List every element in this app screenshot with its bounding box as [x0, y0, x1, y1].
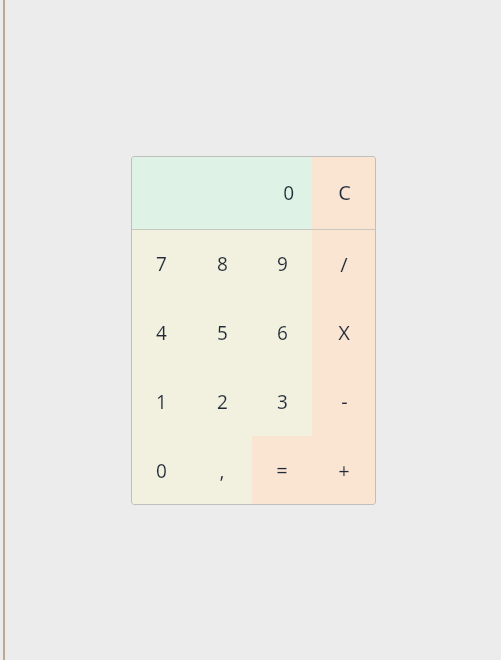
staticText: 7 — [156, 251, 167, 277]
staticText: , — [219, 458, 225, 484]
button[interactable]: = — [252, 436, 312, 505]
button[interactable]: 3 — [252, 367, 312, 436]
staticText: 3 — [277, 389, 288, 415]
button[interactable]: 9 — [252, 230, 312, 298]
staticText: C — [338, 179, 351, 206]
staticText: / — [340, 251, 348, 278]
button[interactable]: 5 — [192, 298, 252, 367]
button[interactable]: Subtract — [312, 367, 376, 436]
button[interactable]: Add — [312, 436, 376, 505]
button[interactable]: 2 — [192, 367, 252, 436]
button[interactable]: 4 — [131, 298, 192, 367]
staticText: 9 — [277, 251, 288, 277]
staticText: - — [341, 388, 348, 415]
button[interactable]: 1 — [131, 367, 192, 436]
staticText: 1 — [156, 389, 167, 415]
staticText: 5 — [217, 320, 228, 346]
staticText: = — [276, 457, 288, 484]
button[interactable]: 6 — [252, 298, 312, 367]
button[interactable]: 8 — [192, 230, 252, 298]
button[interactable]: 0 — [131, 156, 312, 229]
button[interactable]: 7 — [131, 230, 192, 298]
staticText: + — [338, 457, 350, 484]
button[interactable]: C — [312, 156, 376, 229]
staticText: 8 — [217, 251, 228, 277]
button[interactable]: Multiply — [312, 298, 376, 367]
staticText: 4 — [156, 320, 167, 346]
button[interactable]: 0 — [131, 436, 192, 505]
staticText: 6 — [277, 320, 288, 346]
staticText: 2 — [217, 389, 228, 415]
button[interactable]: , — [192, 436, 252, 505]
staticText: 0 — [283, 180, 294, 206]
button[interactable]: Divide — [312, 230, 376, 298]
staticText: X — [338, 319, 350, 346]
staticText: 0 — [156, 458, 167, 484]
